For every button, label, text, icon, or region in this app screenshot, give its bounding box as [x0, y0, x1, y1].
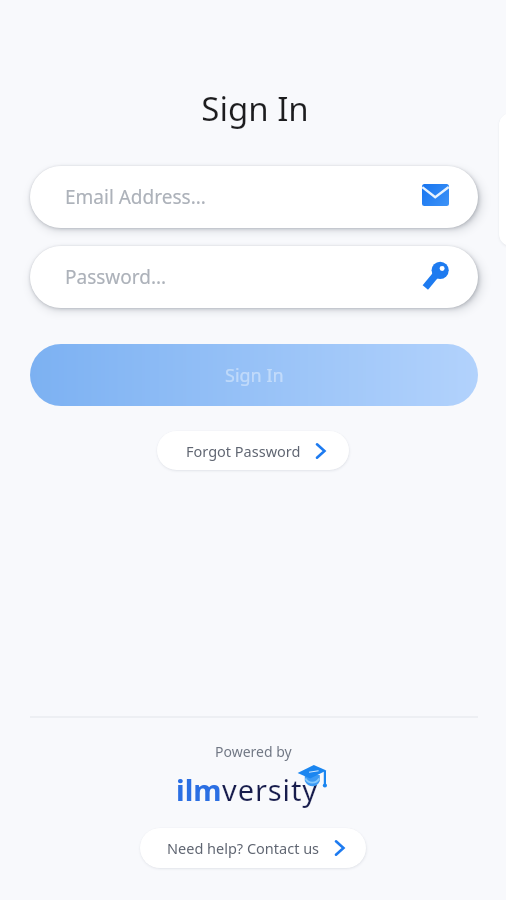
staticText: versity — [222, 770, 318, 809]
button[interactable]: Forgot Password — [157, 431, 349, 470]
button[interactable]: Sign In — [30, 344, 478, 406]
other: Password — [423, 262, 449, 289]
staticText: Sign In — [225, 363, 284, 388]
staticText: Powered by — [215, 742, 292, 761]
staticText: ilm — [176, 770, 222, 809]
button[interactable]: Email Address... — [30, 166, 478, 228]
staticText: Password... — [65, 264, 423, 290]
staticText: Need help? Contact us — [167, 838, 320, 858]
staticText: Email Address... — [65, 184, 422, 210]
staticText: Sign In — [201, 86, 309, 130]
other: Email — [422, 184, 449, 206]
button[interactable]: Need help? Contact us — [140, 828, 366, 868]
staticText: Forgot Password — [186, 441, 301, 461]
button[interactable]: Password... — [30, 246, 478, 308]
